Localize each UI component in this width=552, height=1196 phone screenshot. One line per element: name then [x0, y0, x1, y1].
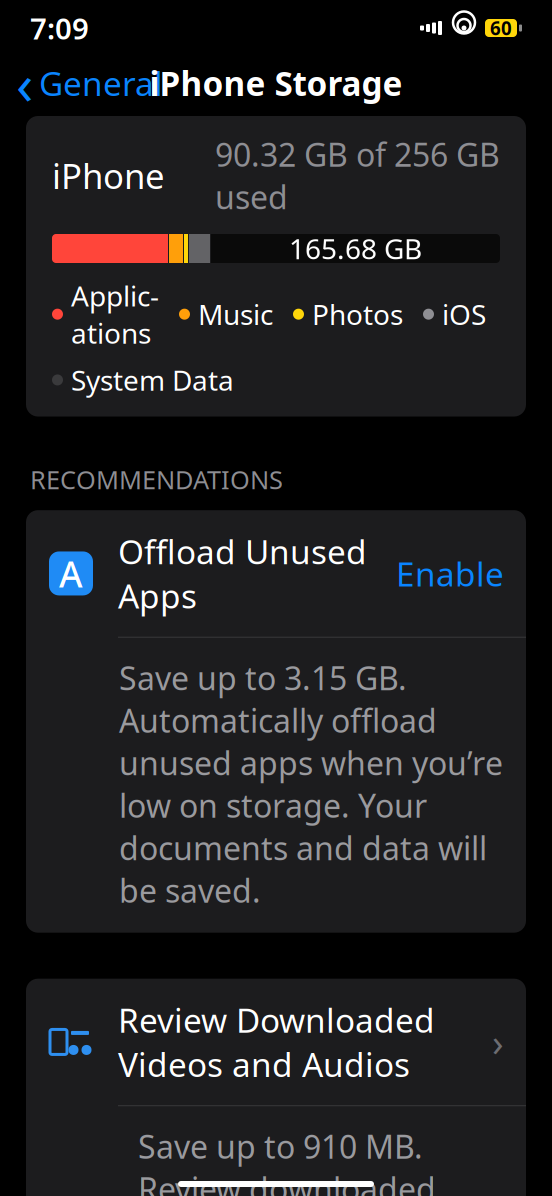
button[interactable]: Review Downloaded Videos and Audios [26, 979, 526, 1105]
staticText: Save up to 3.15 GB. Automatically offloa… [119, 657, 503, 912]
staticText: 165.68 GB [289, 230, 422, 267]
staticText: iOS [442, 296, 486, 333]
staticText: Offload Unused Apps [118, 529, 367, 618]
button[interactable]: ‹ [0, 58, 179, 108]
staticText: A [59, 549, 83, 597]
staticText: iPhone [52, 152, 165, 198]
staticText: 60 [490, 16, 512, 40]
button[interactable]: A [26, 510, 526, 637]
staticText: Enable [396, 551, 504, 596]
staticText: 7:09 [30, 8, 89, 47]
staticText: ‹ [16, 46, 33, 120]
staticText: Applications [71, 277, 159, 351]
staticText: Music [198, 296, 273, 333]
staticText: Save up to 910 MB. Review downloaded vid… [138, 1125, 484, 1196]
staticText: General [39, 61, 163, 105]
staticText: Review Downloaded Videos and Audios [118, 998, 435, 1086]
staticText: System Data [71, 361, 234, 399]
staticText: Photos [312, 296, 403, 333]
staticText: 90.32 GB of 256 GB used [215, 133, 500, 218]
staticText: RECOMMENDATIONS [30, 462, 283, 496]
staticText: › [492, 1017, 504, 1067]
staticText: iPhone Storage [149, 61, 402, 105]
